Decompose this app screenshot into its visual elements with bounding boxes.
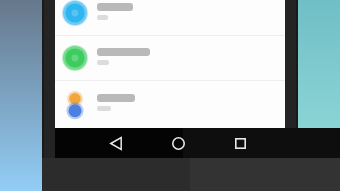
button[interactable] (55, 80, 285, 128)
button[interactable] (55, 0, 285, 35)
button[interactable]: Recent apps (209, 128, 271, 158)
button[interactable] (55, 35, 285, 80)
button[interactable]: Home (147, 128, 209, 158)
button[interactable]: Back (85, 128, 147, 158)
